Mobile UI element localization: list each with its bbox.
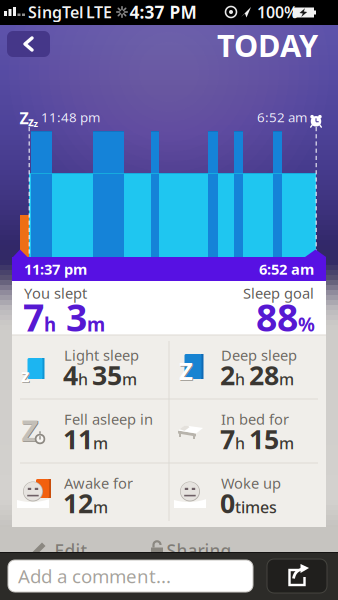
staticText: Add a comment... [18,564,171,588]
staticText: 6:52 am [259,259,314,279]
staticText: Z [21,410,38,449]
staticText: SingTel [28,1,84,23]
staticText: z [28,113,34,129]
staticText: 6:52 am [257,108,307,126]
staticText: In bed for [221,409,289,429]
button[interactable]: Back [7,31,50,57]
staticText: TODAY [217,25,318,65]
staticText: 11m [63,421,108,457]
staticText: z [22,365,31,388]
staticText: 100% [257,1,298,23]
staticText: Z [19,107,28,129]
staticText: Sharing [166,539,231,562]
staticText: You slept [24,283,87,303]
staticText: 7h 3m [23,292,105,342]
staticText: 11:37 pm [24,259,87,279]
button[interactable]: Add a comment [8,560,253,592]
staticText: Deep sleep [221,345,297,365]
staticText: 88% [256,292,315,342]
button[interactable]: Share [267,559,327,593]
staticText: LTE [86,1,112,23]
staticText: 0times [220,485,277,521]
staticText: Sleep goal [243,283,314,303]
button[interactable]: Edit [25,536,95,561]
staticText: Z [180,356,194,387]
staticText: 2h 28m [220,357,294,393]
staticText: Fell asleep in [64,409,153,429]
staticText: z [21,364,30,387]
staticText: Light sleep [64,345,139,365]
staticText: 7h 15m [220,421,294,457]
staticText: 4h 35m [63,357,137,393]
staticText: z [33,117,38,130]
staticText: 11:48 pm [41,108,100,126]
staticText: Edit [54,539,87,562]
staticText: Awake for [64,473,133,493]
staticText: 4:37 PM [129,0,196,23]
staticText: Z [22,411,39,450]
staticText: Z [179,355,193,387]
staticText: Woke up [221,473,281,493]
button[interactable]: Sharing [147,536,239,561]
staticText: 12m [63,485,108,521]
